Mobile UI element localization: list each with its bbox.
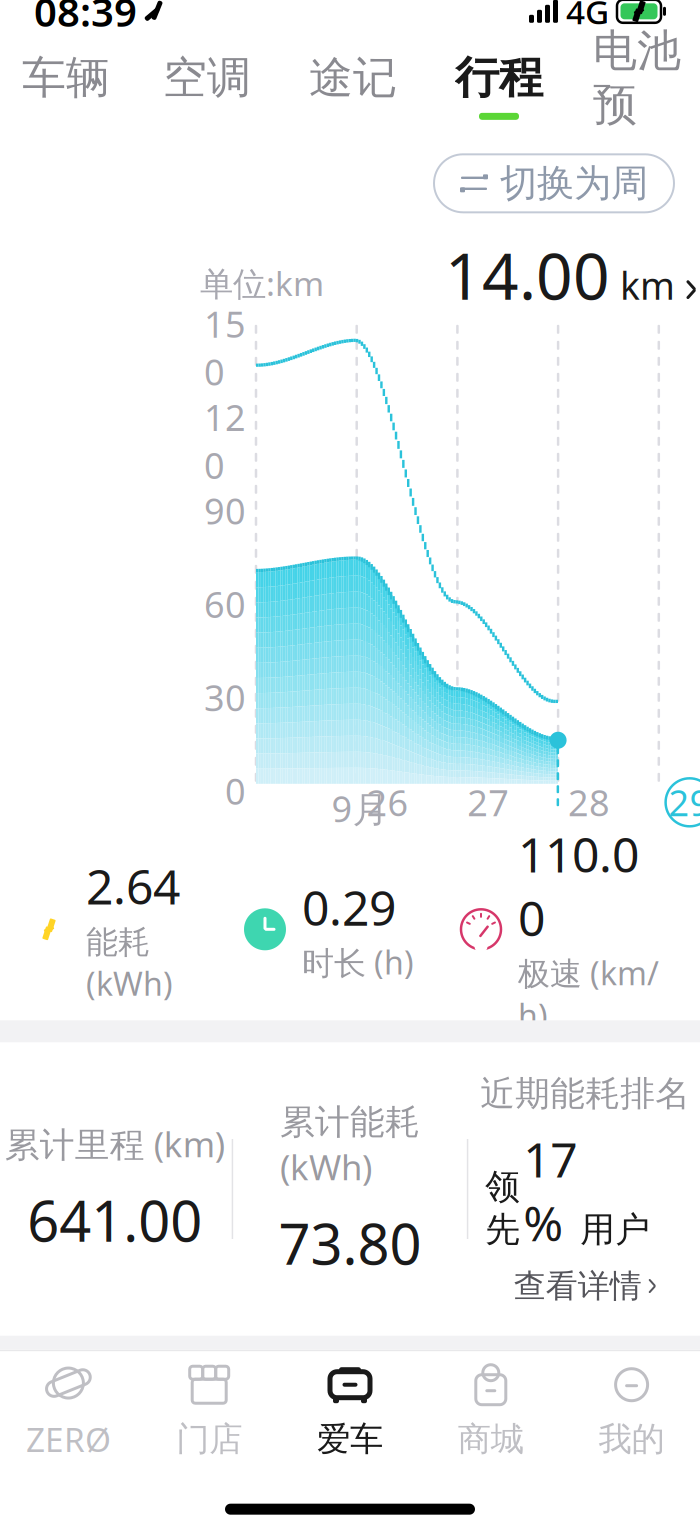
staticText: 150 xyxy=(204,300,246,395)
staticText: km xyxy=(620,260,675,310)
staticText: 26 xyxy=(366,778,408,826)
staticText: 电池预 xyxy=(593,24,681,132)
staticText: 9月 xyxy=(331,784,388,832)
staticText: 14.00 xyxy=(445,232,610,317)
staticText: 30 xyxy=(204,673,246,721)
button[interactable]: 车辆 xyxy=(0,42,134,128)
staticText: 累计里程 (km) xyxy=(5,1121,225,1167)
staticText: 27 xyxy=(467,778,509,826)
staticText: 0 xyxy=(225,767,246,815)
staticText: 时长 (h) xyxy=(302,941,414,983)
button[interactable]: 我的 xyxy=(561,1351,700,1469)
button[interactable]: 电池预 xyxy=(572,42,700,128)
staticText: 查看详情 xyxy=(514,1266,642,1306)
staticText: 4G xyxy=(566,0,609,33)
staticText: 爱车 xyxy=(317,1419,383,1460)
staticText: 90 xyxy=(204,487,246,534)
staticText: ZERØ xyxy=(26,1417,111,1461)
staticText: 商城 xyxy=(458,1419,524,1460)
staticText: 领先 xyxy=(485,1166,520,1251)
staticText: 110.00 xyxy=(518,822,639,950)
button[interactable]: 爱车 xyxy=(280,1351,420,1469)
button[interactable]: 行程 xyxy=(426,42,572,128)
staticText: 行程 xyxy=(455,51,543,105)
staticText: 车辆 xyxy=(22,51,110,105)
staticText: 120 xyxy=(204,393,246,489)
staticText: 2.64 xyxy=(86,854,180,918)
staticText: 60 xyxy=(204,580,246,628)
staticText: 切换为周 xyxy=(500,160,648,206)
button[interactable]: ZERØ xyxy=(0,1351,139,1469)
staticText: 单位:km xyxy=(200,261,324,305)
staticText: 73.80 xyxy=(278,1206,421,1280)
staticText: 08:39 xyxy=(34,0,137,38)
staticText: 极速 (km/h) xyxy=(518,952,659,1037)
staticText: 累计能耗 (kWh) xyxy=(280,1098,420,1190)
button[interactable]: 近期能耗排名 xyxy=(468,1072,700,1306)
staticText: 28 xyxy=(568,778,610,826)
staticText: 空调 xyxy=(163,51,251,105)
button[interactable]: 14.00 xyxy=(411,234,700,327)
staticText: 能耗 (kWh) xyxy=(86,920,173,1005)
staticText: 门店 xyxy=(176,1419,242,1460)
staticText: 我的 xyxy=(599,1419,665,1460)
staticText: 17% xyxy=(523,1127,577,1254)
staticText: 用户 xyxy=(580,1208,650,1251)
staticText: 途记 xyxy=(309,51,397,105)
button[interactable]: 门店 xyxy=(139,1351,280,1469)
staticText: 641.00 xyxy=(27,1183,202,1257)
button[interactable]: 商城 xyxy=(420,1351,561,1469)
button[interactable]: 切换为周 xyxy=(434,154,674,212)
button[interactable]: 空调 xyxy=(134,42,280,128)
staticText: 近期能耗排名 xyxy=(480,1072,690,1115)
staticText: 29 xyxy=(669,778,700,826)
button[interactable]: 途记 xyxy=(280,42,426,128)
staticText: 0.29 xyxy=(302,875,396,939)
